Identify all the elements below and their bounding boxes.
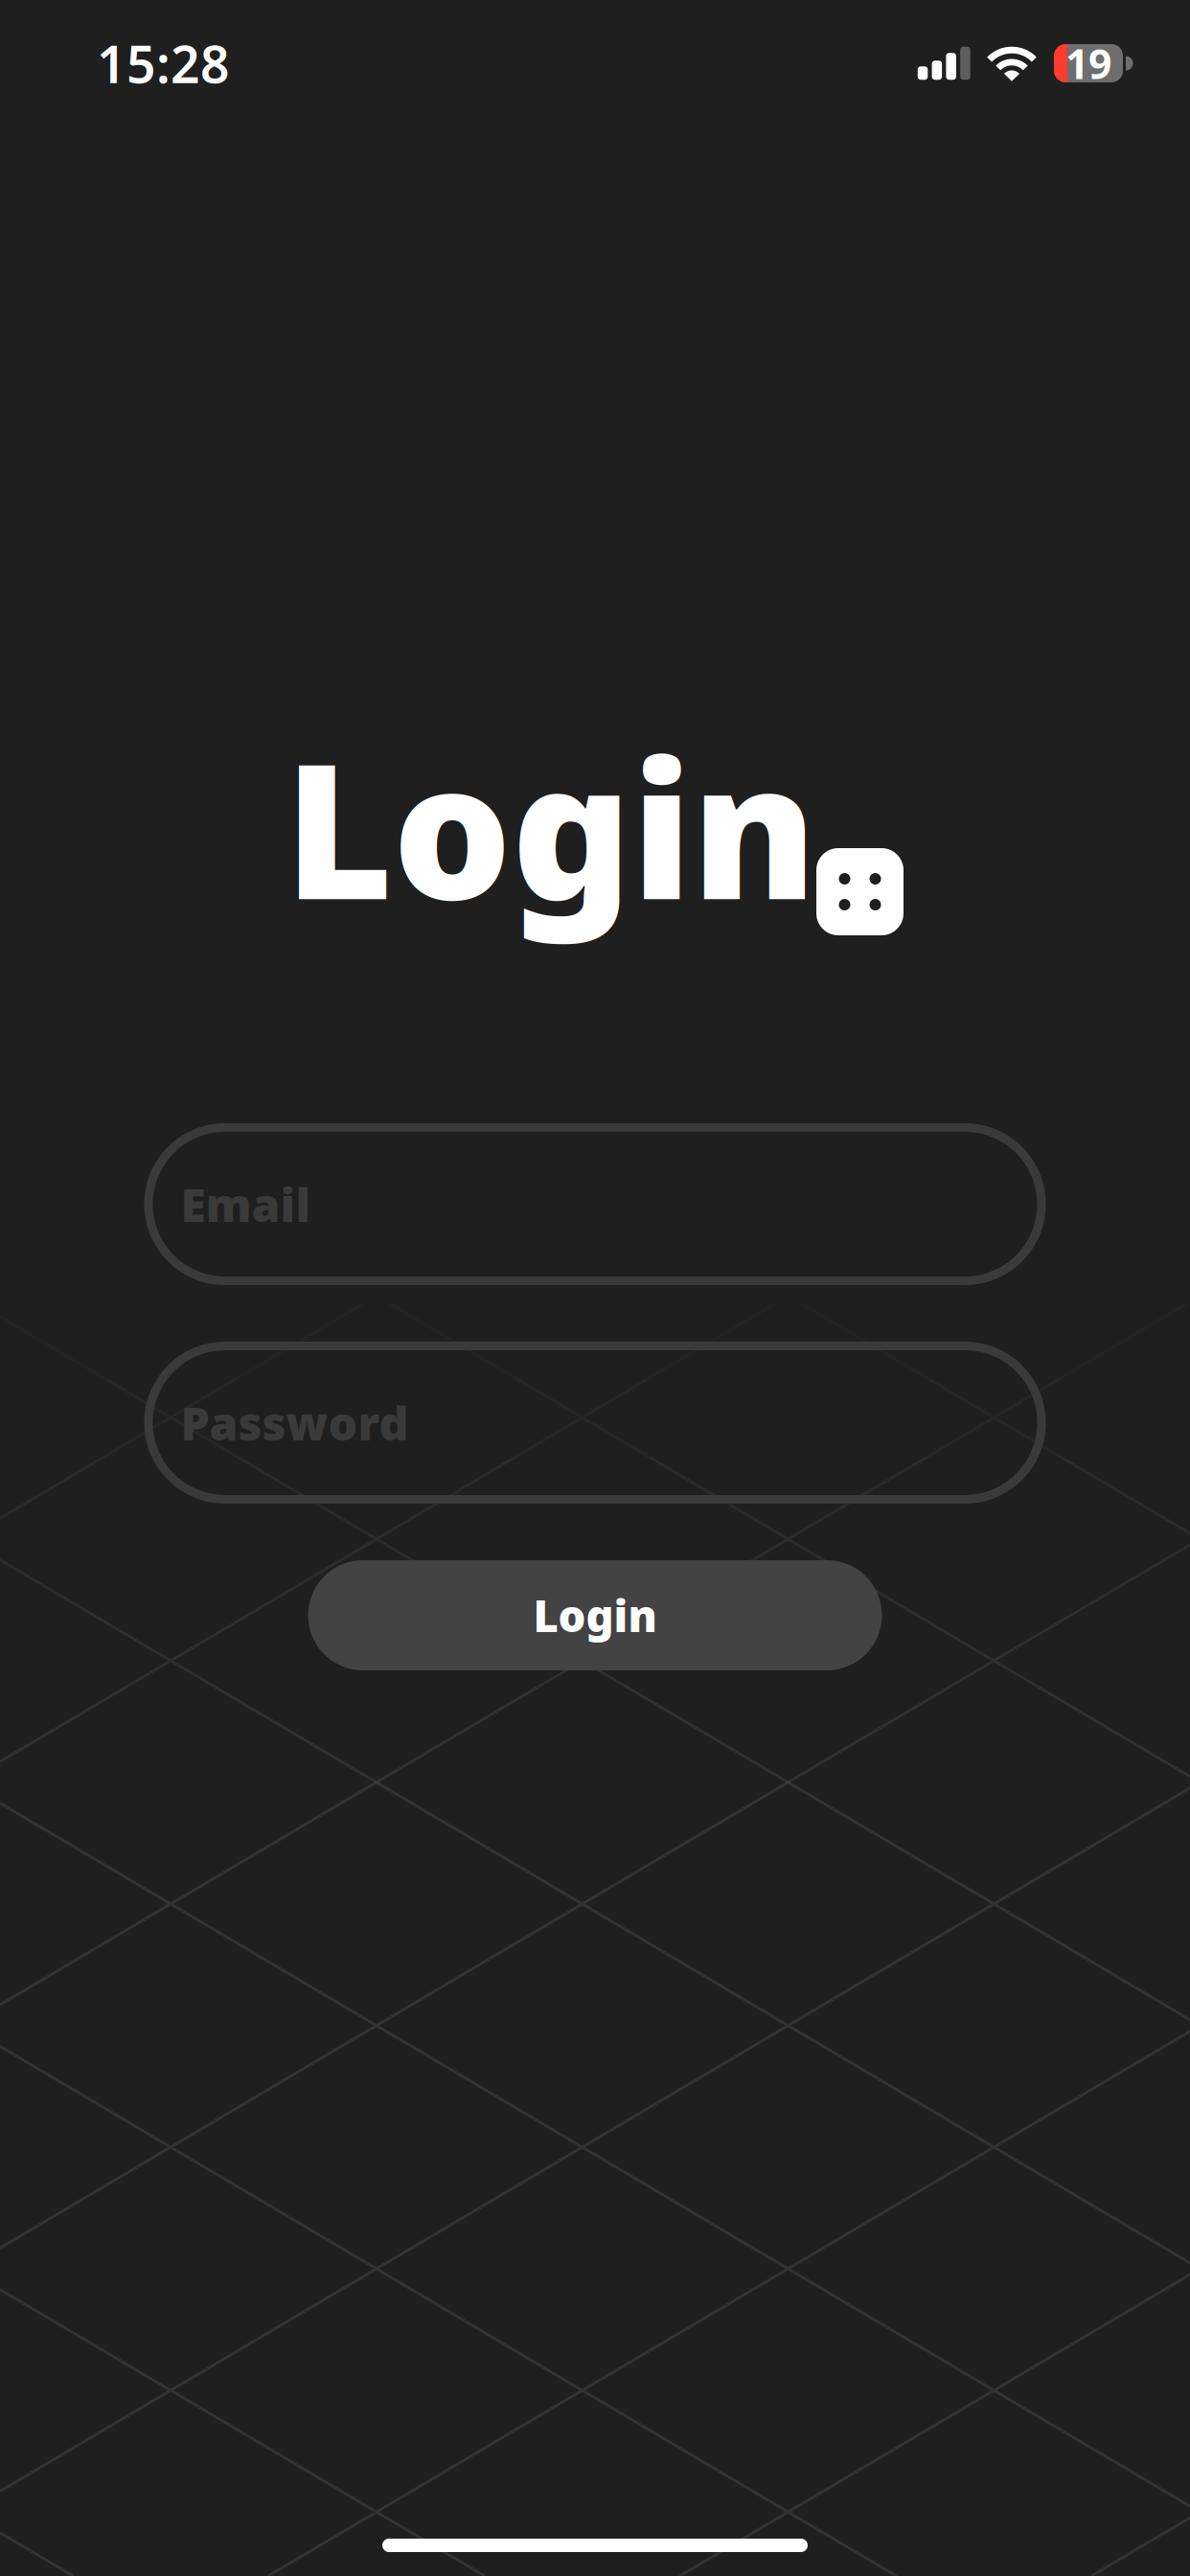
staticText: Password bbox=[181, 1392, 409, 1453]
button[interactable]: Email bbox=[144, 1123, 1046, 1285]
button[interactable]: Login bbox=[308, 1560, 882, 1670]
staticText: 19 bbox=[1065, 36, 1111, 90]
staticText: Login bbox=[533, 1586, 657, 1644]
staticText: Email bbox=[181, 1174, 311, 1235]
button[interactable]: Password bbox=[144, 1342, 1046, 1504]
staticText: Login bbox=[285, 703, 816, 951]
staticText: 15:28 bbox=[97, 29, 230, 97]
